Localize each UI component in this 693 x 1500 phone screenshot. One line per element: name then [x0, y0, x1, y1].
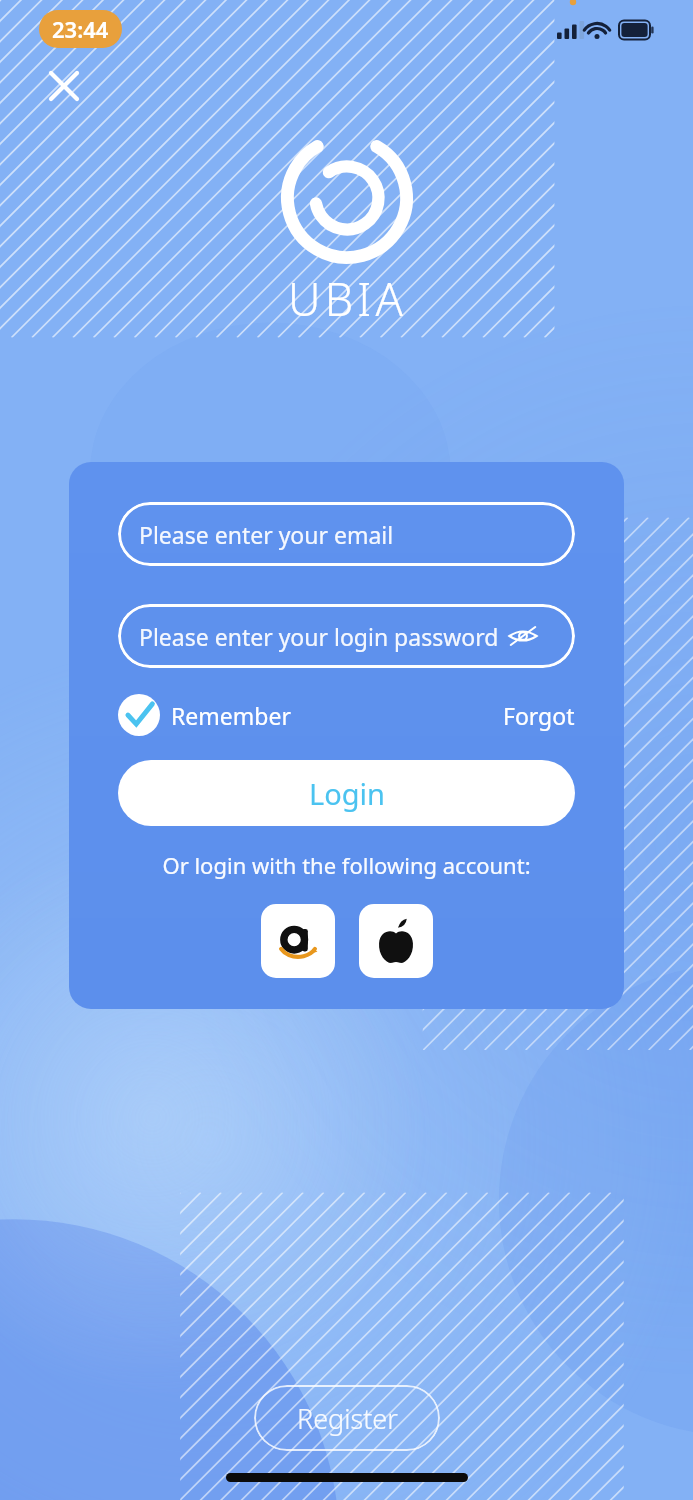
staticText: Please enter your email: [139, 519, 394, 550]
staticText: Forgot: [503, 700, 575, 731]
button[interactable]: Please enter your email: [118, 502, 575, 566]
button[interactable]: Remember: [118, 694, 291, 736]
button[interactable]: Login with Apple: [359, 904, 433, 978]
staticText: Please enter your login password: [139, 621, 499, 652]
button[interactable]: Show password: [505, 618, 541, 654]
button[interactable]: Login with Amazon: [261, 904, 335, 978]
staticText: 23:44: [52, 14, 109, 44]
staticText: Remember: [171, 700, 291, 731]
staticText: Login: [309, 774, 385, 813]
button[interactable]: Login: [118, 760, 575, 826]
button[interactable]: Close: [40, 62, 88, 110]
button[interactable]: Register: [254, 1385, 440, 1451]
button[interactable]: Please enter your login password: [118, 604, 575, 668]
staticText: Or login with the following account:: [118, 850, 575, 880]
staticText: UBIA: [288, 268, 407, 329]
button[interactable]: Forgot: [503, 700, 575, 731]
staticText: Register: [297, 1400, 398, 1437]
